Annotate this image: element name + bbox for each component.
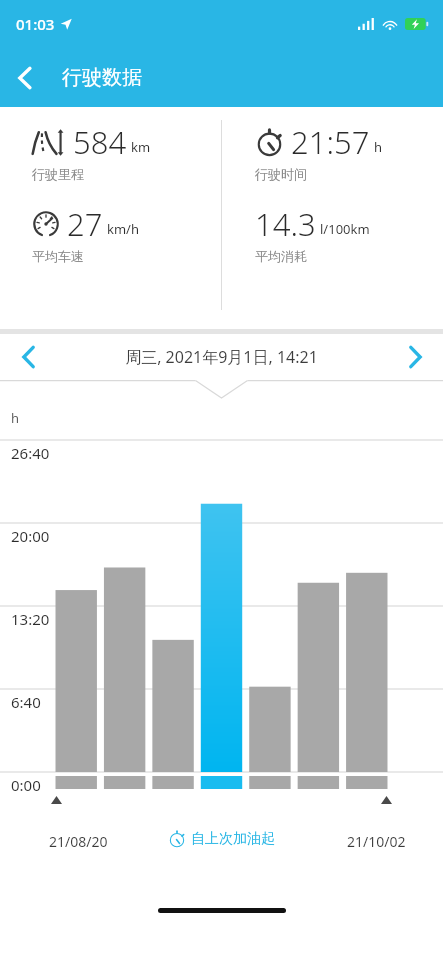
staticText: 平均车速 [32,248,84,264]
button[interactable]: Previous period [0,334,56,380]
staticText: 01:03 [16,14,55,34]
staticText: 行驶时间 [255,166,307,182]
staticText: 13:20 [11,609,50,629]
staticText: 自上次加油起 [191,830,275,848]
staticText: 周三, 2021年9月1日, 14:21 [125,346,318,368]
staticText: 平均消耗 [255,248,307,264]
staticText: 27 [67,203,103,245]
staticText: 14.3 [255,203,316,245]
staticText: 0:00 [11,775,41,795]
staticText: 21/10/02 [347,832,406,851]
staticText: l/100km [320,220,370,238]
button[interactable]: Back [0,54,48,102]
staticText: h [374,138,383,156]
staticText: 21/08/20 [49,832,108,851]
staticText: 20:00 [11,526,50,546]
staticText: 26:40 [11,443,50,463]
staticText: 行驶里程 [32,166,84,182]
staticText: km/h [107,220,139,238]
staticText: 584 [73,121,127,163]
button[interactable]: Next period [387,334,443,380]
button[interactable]: 自上次加油起 [168,830,275,848]
staticText: 行驶数据 [62,65,142,90]
staticText: 21:57 [291,121,370,163]
staticText: km [131,138,151,156]
staticText: h [11,409,20,427]
staticText: 6:40 [11,692,41,712]
